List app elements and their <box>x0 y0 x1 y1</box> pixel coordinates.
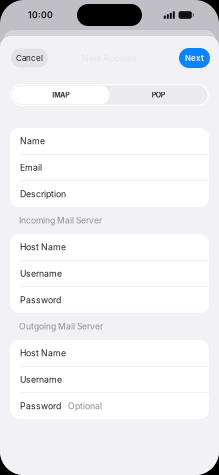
staticText: Description <box>20 189 66 199</box>
button[interactable]: Next <box>179 48 210 68</box>
staticText: Optional <box>68 401 102 411</box>
button[interactable]: POP <box>109 86 207 104</box>
button[interactable]: IMAP <box>12 86 109 104</box>
button[interactable]: Cancel <box>11 48 48 67</box>
button[interactable]: Username <box>10 366 209 392</box>
staticText: Password <box>20 401 61 411</box>
staticText: Outgoing Mail Server <box>19 321 103 332</box>
staticText: POP <box>152 91 165 99</box>
staticText: IMAP <box>52 91 69 99</box>
button[interactable]: Host Name <box>10 234 209 260</box>
button[interactable]: Password <box>10 393 209 419</box>
button[interactable]: Host Name <box>10 340 209 366</box>
button[interactable]: Email <box>10 154 209 180</box>
staticText: Host Name <box>20 242 66 252</box>
staticText: Cancel <box>16 53 43 63</box>
staticText: Username <box>20 268 62 279</box>
staticText: Incoming Mail Server <box>19 215 102 226</box>
staticText: Host Name <box>20 348 66 358</box>
staticText: Next <box>185 53 204 63</box>
staticText: Username <box>20 374 62 385</box>
staticText: Password <box>20 295 61 305</box>
button[interactable]: Password <box>10 287 209 313</box>
button[interactable]: Description <box>10 181 209 207</box>
staticText: Name <box>20 136 45 146</box>
button[interactable]: Name <box>10 128 209 154</box>
staticText: 10:00 <box>28 10 53 20</box>
button[interactable]: Username <box>10 260 209 286</box>
staticText: Email <box>20 162 42 173</box>
